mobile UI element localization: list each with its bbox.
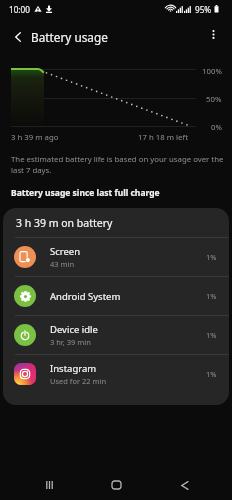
staticText: Device idle: [50, 323, 98, 336]
staticText: The estimated battery life is based on y…: [11, 154, 224, 176]
staticText: Instagram: [50, 362, 97, 375]
button[interactable]: Back: [165, 470, 203, 500]
staticText: 10:00: [9, 4, 30, 15]
button[interactable]: Instagram: [3, 355, 229, 393]
button[interactable]: Back: [0, 18, 31, 55]
staticText: 100%: [202, 66, 222, 77]
button[interactable]: Android System: [3, 277, 229, 315]
staticText: Battery usage since last full charge: [11, 187, 160, 199]
button[interactable]: Device idle: [3, 316, 229, 354]
button[interactable]: Screen: [3, 238, 229, 276]
button[interactable]: Recents: [30, 470, 68, 500]
staticText: 3 h 39 m on battery: [16, 216, 113, 230]
staticText: 0%: [211, 122, 222, 133]
staticText: Android System: [50, 290, 121, 303]
staticText: 43 min: [50, 259, 75, 269]
button[interactable]: More options: [200, 18, 232, 55]
staticText: 17 h 18 m left: [138, 132, 188, 143]
staticText: 1%: [206, 369, 217, 379]
button[interactable]: Home: [97, 470, 135, 500]
staticText: 3 h 39 m ago: [11, 132, 59, 143]
staticText: 3 hr, 39 min: [50, 337, 91, 347]
staticText: Screen: [50, 245, 81, 258]
staticText: Battery usage: [31, 29, 108, 45]
staticText: 95%: [195, 4, 212, 15]
staticText: 1%: [206, 291, 217, 301]
staticText: 50%: [206, 94, 222, 105]
staticText: 1%: [206, 252, 217, 262]
staticText: Used for 22 min: [50, 376, 107, 386]
staticText: 1%: [206, 330, 217, 340]
